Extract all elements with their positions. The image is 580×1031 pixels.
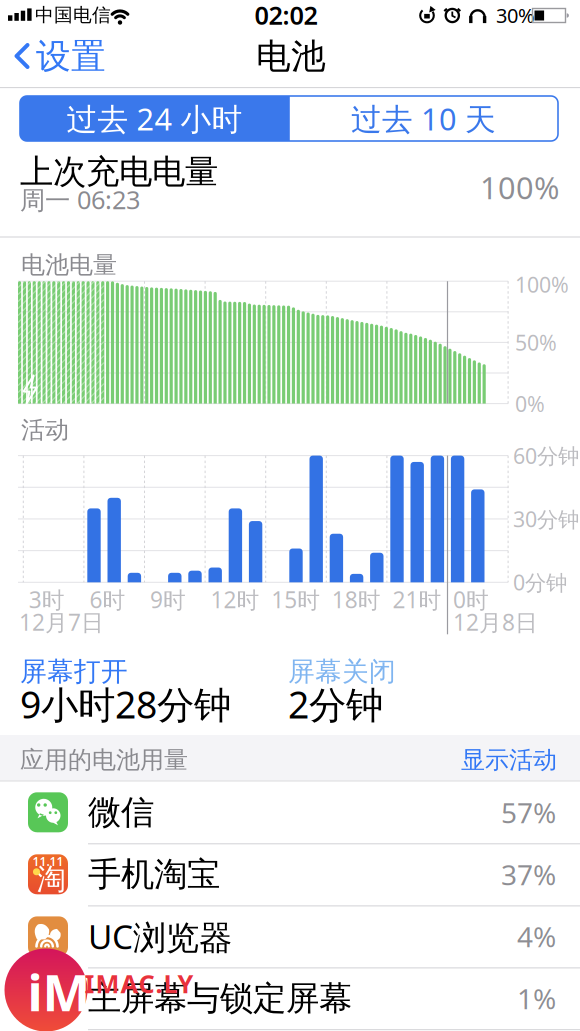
staticText: 过去 24 小时 — [66, 98, 242, 139]
staticText: 9时 — [150, 584, 186, 614]
staticText: 12月8日 — [453, 607, 538, 637]
button[interactable]: 11.11 — [0, 843, 580, 905]
staticText: 60分钟 — [513, 441, 579, 470]
staticText: 100% — [480, 167, 559, 208]
staticText: 0分钟 — [513, 568, 567, 596]
staticText: 淘 — [36, 861, 65, 897]
button[interactable]: 微信 — [0, 781, 580, 843]
staticText: 0时 — [453, 584, 489, 614]
staticText: UC浏览器 — [88, 914, 232, 959]
staticText: 手机淘宝 — [88, 854, 220, 895]
staticText: 9小时28分钟 — [20, 679, 231, 729]
button[interactable]: 显示活动 — [397, 740, 557, 780]
staticText: 设置 — [36, 35, 106, 78]
button[interactable]: 主屏幕与锁定屏幕 — [0, 967, 580, 1029]
staticText: 3时 — [29, 584, 65, 614]
button[interactable]: 过去 24 小时 — [20, 96, 289, 141]
staticText: 12月7日 — [19, 607, 104, 637]
button[interactable]: 返回设置 — [14, 34, 106, 78]
staticText: 应用的电池用量 — [20, 745, 188, 775]
staticText: iM — [27, 958, 90, 1025]
staticText: 4% — [517, 918, 556, 955]
staticText: 周一 06:23 — [20, 183, 140, 216]
staticText: 屏幕打开 — [20, 655, 128, 688]
staticText: 活动 — [21, 415, 69, 445]
staticText: 11.11 — [32, 853, 63, 869]
staticText: 18时 — [332, 584, 381, 614]
staticText: 30分钟 — [513, 505, 579, 533]
staticText: 100% — [515, 270, 569, 299]
button[interactable]: 过去 10 天 — [289, 96, 558, 141]
staticText: 电池 — [256, 35, 326, 78]
staticText: 0% — [515, 389, 545, 418]
staticText: 微信 — [88, 792, 154, 833]
staticText: 02:02 — [254, 0, 317, 32]
staticText: 主屏幕与锁定屏幕 — [88, 978, 352, 1019]
staticText: 1% — [517, 980, 556, 1017]
staticText: 15时 — [271, 584, 320, 614]
staticText: 上次充电电量 — [20, 151, 218, 192]
staticText: 2分钟 — [288, 679, 383, 729]
staticText: 21时 — [392, 584, 441, 614]
button[interactable]: UC浏览器 — [0, 905, 580, 967]
staticText: 50% — [515, 328, 557, 356]
staticText: 过去 10 天 — [351, 98, 496, 139]
staticText: 中国电信 — [35, 3, 111, 26]
staticText: 12时 — [211, 584, 260, 614]
staticText: 57% — [501, 794, 556, 831]
staticText: 屏幕关闭 — [288, 655, 396, 688]
staticText: 显示活动 — [461, 745, 557, 775]
staticText: 37% — [501, 856, 556, 893]
staticText: IMAC.LY — [84, 967, 193, 1000]
staticText: 电池电量 — [21, 250, 117, 280]
staticText: 30% — [496, 2, 535, 28]
staticText: 6时 — [89, 584, 125, 614]
